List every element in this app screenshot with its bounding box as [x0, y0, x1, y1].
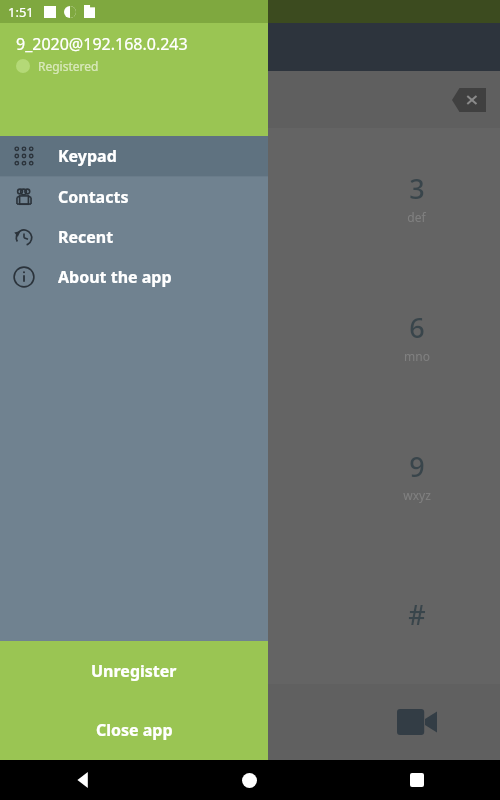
- button[interactable]: Backspace: [452, 88, 486, 112]
- button[interactable]: *: [0, 545, 166, 684]
- staticText: Contacts: [58, 186, 129, 208]
- button[interactable]: About the app: [0, 257, 268, 297]
- staticText: wxyz: [403, 487, 431, 503]
- button[interactable]: Recent: [0, 217, 268, 257]
- button[interactable]: #: [333, 545, 500, 684]
- button[interactable]: 8: [166, 406, 333, 545]
- staticText: mno: [404, 348, 430, 364]
- button[interactable]: 6: [333, 267, 500, 406]
- staticText: 6: [409, 309, 425, 346]
- button[interactable]: Keypad: [0, 136, 268, 176]
- staticText: +: [246, 626, 253, 642]
- staticText: 1:51: [8, 3, 34, 21]
- button[interactable]: 2: [166, 128, 333, 267]
- staticText: Unregister: [91, 660, 177, 682]
- button[interactable]: 9: [333, 406, 500, 545]
- staticText: 9_2020@192.168.0.243: [16, 33, 188, 55]
- button[interactable]: 4: [0, 267, 166, 406]
- staticText: Registered: [38, 58, 99, 74]
- button[interactable]: 5: [166, 267, 333, 406]
- button[interactable]: Contacts: [0, 177, 268, 217]
- staticText: Recent: [58, 226, 114, 248]
- button[interactable]: Home: [166, 760, 333, 800]
- button[interactable]: Back: [0, 760, 166, 800]
- button[interactable]: 0: [166, 545, 333, 684]
- button[interactable]: Close app: [0, 700, 268, 759]
- button[interactable]: Unregister: [0, 641, 268, 700]
- staticText: 3: [409, 170, 425, 207]
- staticText: 1: [75, 179, 91, 216]
- button[interactable]: 1: [0, 128, 166, 267]
- staticText: 9: [409, 448, 425, 485]
- staticText: Close app: [96, 719, 173, 741]
- staticText: Keypad: [58, 145, 117, 167]
- button[interactable]: Video call: [333, 684, 500, 760]
- staticText: def: [407, 209, 426, 225]
- staticText: 2: [242, 170, 258, 207]
- staticText: About the app: [58, 266, 172, 288]
- staticText: #: [408, 596, 426, 633]
- button[interactable]: Recents: [333, 760, 500, 800]
